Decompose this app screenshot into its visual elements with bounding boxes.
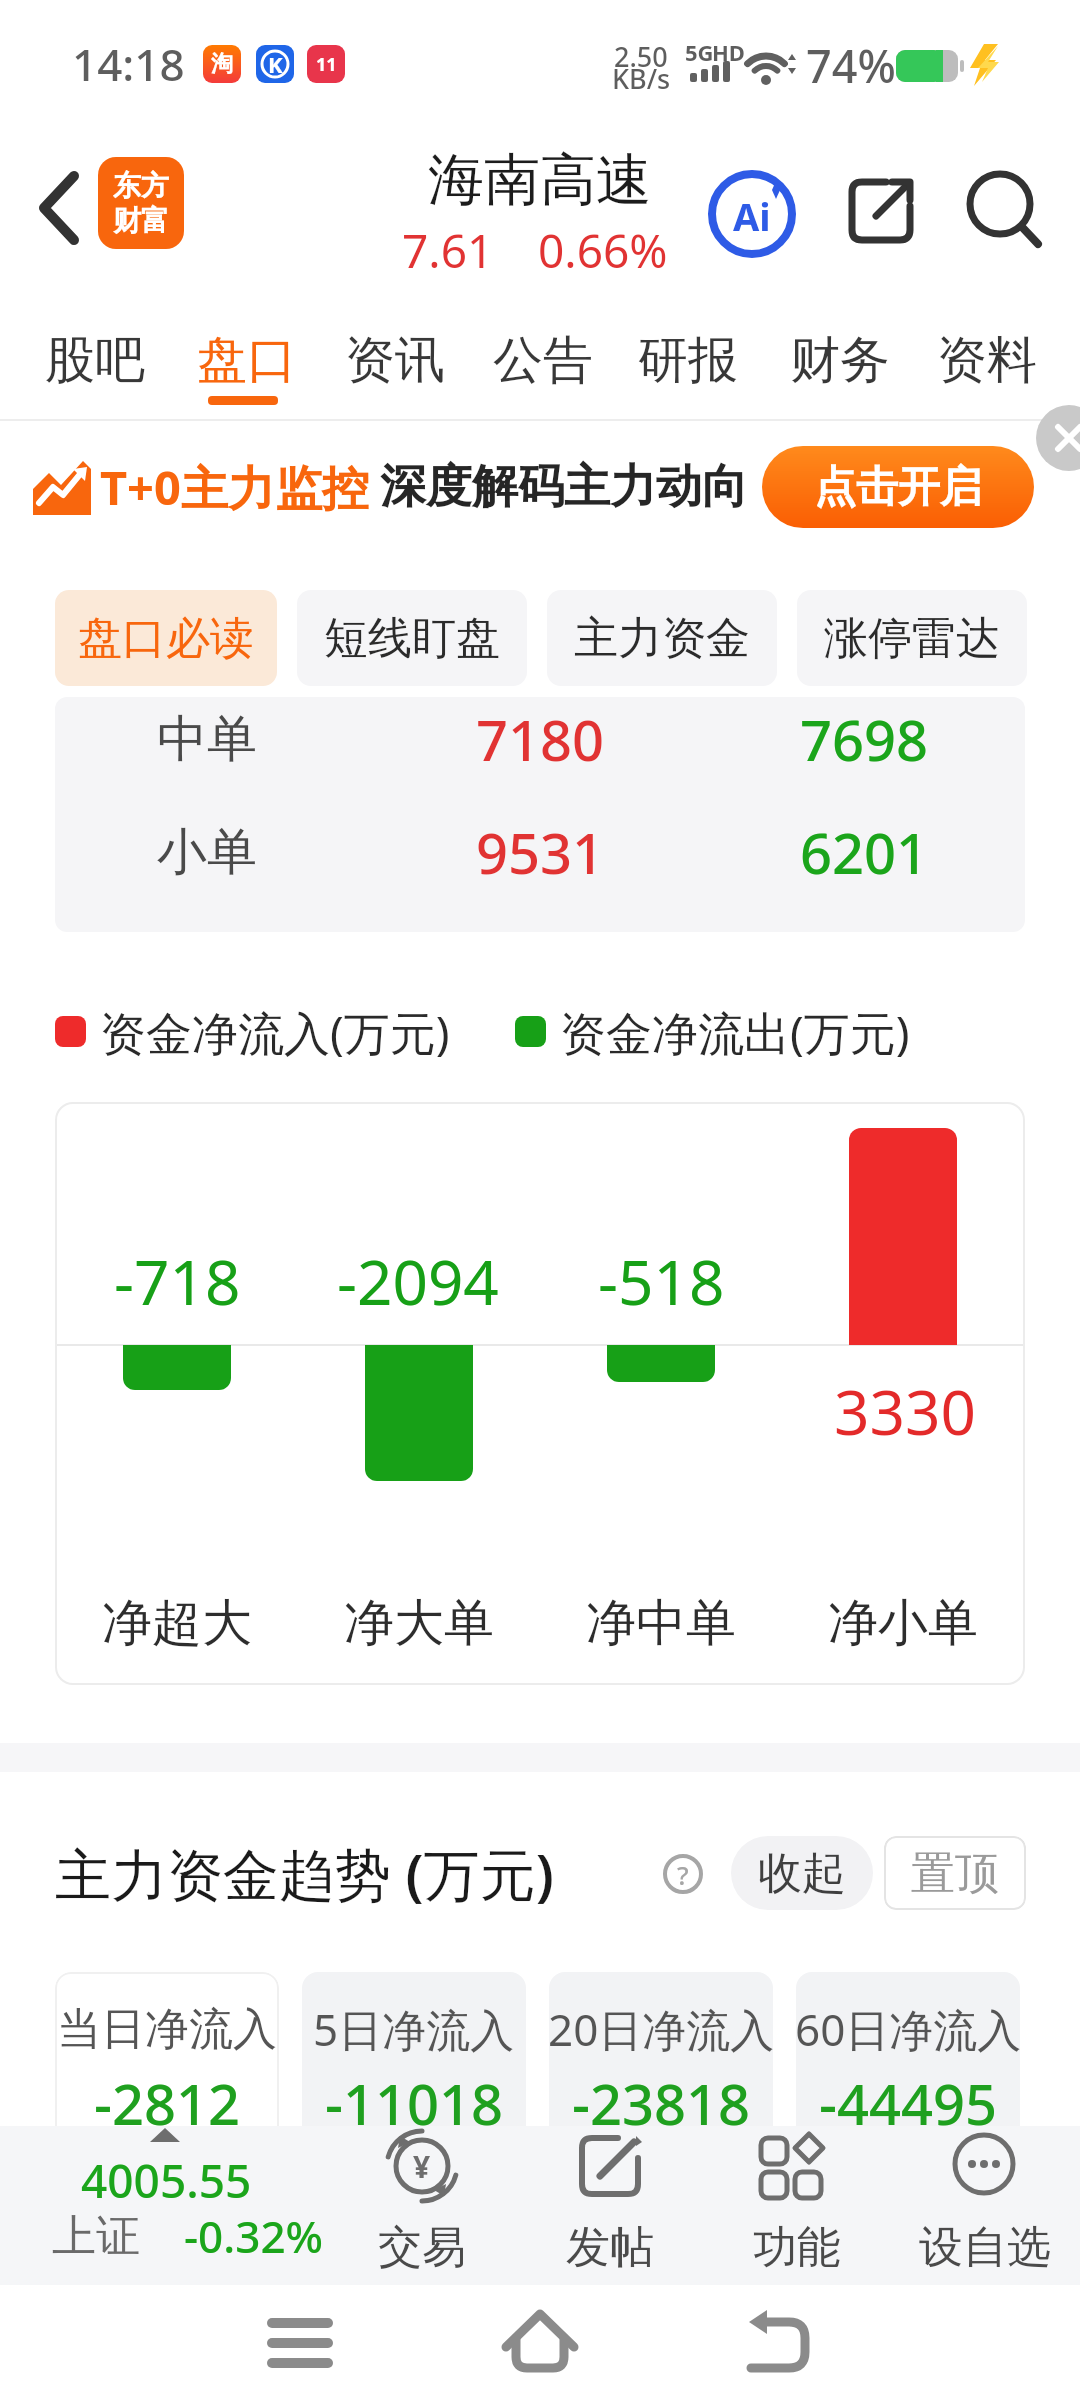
button[interactable] — [966, 172, 1042, 248]
staticText: -718 — [114, 1239, 241, 1323]
button[interactable] — [549, 1972, 773, 2142]
staticText: 2.50 — [614, 38, 668, 75]
staticText: T+0主力监控 — [100, 455, 369, 519]
staticText: 盘口 — [197, 329, 297, 392]
staticText: 资金净流出(万元) — [560, 1001, 910, 1064]
staticText: HD — [712, 37, 745, 67]
button[interactable] — [30, 2140, 340, 2270]
staticText: K — [268, 49, 283, 79]
staticText: 主力资金趋势 (万元) — [55, 1835, 554, 1911]
staticText: 小单 — [157, 821, 257, 884]
button[interactable]: 置顶 — [884, 1836, 1026, 1910]
staticText: -2812 — [94, 2065, 241, 2141]
staticText: 点击开启 — [814, 461, 982, 514]
staticText: 11 — [316, 52, 337, 77]
staticText: 净大单 — [344, 1592, 494, 1655]
button[interactable] — [560, 2130, 664, 2275]
staticText: 74% — [806, 35, 896, 96]
staticText: 功能 — [753, 2220, 841, 2275]
staticText: 涨停雷达 — [824, 611, 1000, 666]
staticText: 置顶 — [911, 1846, 999, 1901]
staticText: ? — [677, 1857, 689, 1892]
staticText: 7.61 — [402, 219, 494, 282]
button[interactable]: 点击开启 — [762, 446, 1034, 528]
staticText: ¥ — [413, 2146, 431, 2187]
button[interactable] — [920, 2130, 1050, 2275]
staticText: 资讯 — [345, 329, 445, 392]
staticText: 中单 — [157, 708, 257, 771]
staticText: -11018 — [325, 2065, 504, 2141]
button[interactable]: 公告 — [488, 310, 598, 410]
button[interactable] — [1036, 405, 1080, 471]
button[interactable] — [745, 2130, 849, 2275]
staticText: 7180 — [476, 701, 605, 777]
staticText: 14:18 — [72, 34, 185, 94]
staticText: 7698 — [800, 701, 929, 777]
staticText: 当日净流入 — [57, 2002, 277, 2057]
staticText: KB/s — [612, 60, 671, 97]
staticText: -2094 — [337, 1239, 499, 1323]
button[interactable]: 收起 — [731, 1836, 873, 1910]
staticText: 研报 — [638, 329, 738, 392]
staticText: -0.32% — [184, 2206, 324, 2266]
staticText: 9531 — [476, 814, 605, 890]
button[interactable]: 主力资金 — [547, 590, 777, 686]
staticText: 3330 — [834, 1369, 976, 1453]
staticText: 0.66% — [538, 219, 668, 282]
staticText: 60日净流入 — [795, 1999, 1022, 2059]
staticText: Ai — [733, 190, 771, 242]
staticText: 盘口必读 — [78, 611, 254, 666]
staticText: -518 — [598, 1239, 725, 1323]
staticText: 5G — [685, 37, 714, 67]
button[interactable]: 资料 — [932, 310, 1042, 410]
staticText: 淘 — [211, 50, 233, 78]
staticText: 上证 — [52, 2209, 140, 2264]
button[interactable]: 财务 — [785, 310, 895, 410]
staticText: 短线盯盘 — [324, 611, 500, 666]
staticText: 发帖 — [566, 2220, 654, 2275]
staticText: 设自选 — [919, 2220, 1051, 2275]
staticText: 海南高速 — [428, 145, 652, 216]
button[interactable] — [503, 2308, 577, 2372]
staticText: 财富 — [113, 203, 169, 238]
staticText: 净中单 — [586, 1592, 736, 1655]
staticText: -23818 — [572, 2065, 751, 2141]
staticText: 净小单 — [828, 1592, 978, 1655]
staticText: 4005.55 — [81, 2149, 252, 2212]
staticText: 收起 — [758, 1846, 846, 1901]
button[interactable]: 涨停雷达 — [797, 590, 1027, 686]
button[interactable] — [846, 174, 918, 246]
button[interactable] — [36, 170, 82, 246]
staticText: 财务 — [790, 329, 890, 392]
staticText: 6201 — [800, 814, 929, 890]
button[interactable]: 盘口 — [192, 310, 302, 410]
staticText: 净超大 — [102, 1592, 252, 1655]
button[interactable] — [270, 2318, 330, 2368]
staticText: 交易 — [378, 2220, 466, 2275]
button[interactable] — [745, 2306, 813, 2372]
button[interactable] — [796, 1972, 1020, 2142]
button[interactable]: 东方 — [98, 157, 184, 249]
button[interactable]: 研报 — [633, 310, 743, 410]
button[interactable]: Ai — [708, 170, 796, 258]
staticText: 股吧 — [45, 329, 145, 392]
staticText: 主力资金 — [574, 611, 750, 666]
staticText: 深度解码主力动向 — [380, 458, 748, 516]
button[interactable]: 股吧 — [40, 310, 150, 410]
staticText: 公告 — [493, 329, 593, 392]
staticText: -44495 — [819, 2065, 998, 2141]
staticText: 20日净流入 — [548, 1999, 775, 2059]
button[interactable]: 短线盯盘 — [297, 590, 527, 686]
staticText: 5日净流入 — [313, 1999, 515, 2059]
staticText: 资金净流入(万元) — [100, 1001, 450, 1064]
button[interactable] — [370, 2130, 474, 2275]
button[interactable] — [55, 1972, 279, 2142]
button[interactable]: 盘口必读 — [55, 590, 277, 686]
staticText: 东方 — [113, 168, 169, 203]
staticText: 资料 — [937, 329, 1037, 392]
button[interactable] — [302, 1972, 526, 2142]
button[interactable]: 资讯 — [340, 310, 450, 410]
